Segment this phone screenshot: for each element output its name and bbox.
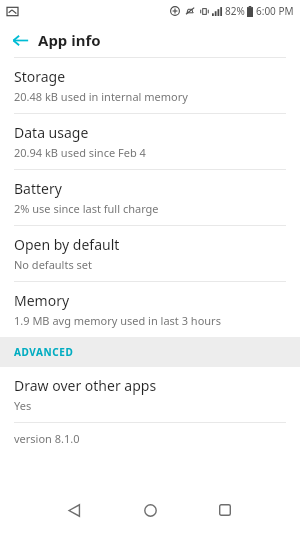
button[interactable]: Recent apps [210, 495, 240, 525]
staticText: Data usage [14, 123, 89, 142]
staticText: Open by default [14, 235, 120, 254]
button[interactable]: Data usage [0, 114, 300, 169]
staticText: Yes [14, 398, 32, 413]
staticText: Memory [14, 291, 70, 310]
button[interactable]: Back [6, 26, 34, 54]
button[interactable]: Battery [0, 170, 300, 225]
staticText: App info [38, 30, 101, 50]
staticText: Battery [14, 179, 62, 198]
button[interactable]: Storage [0, 58, 300, 113]
staticText: No defaults set [14, 257, 92, 272]
staticText: 20.48 kB used in internal memory [14, 89, 188, 104]
staticText: ADVANCED [14, 345, 74, 359]
staticText: 6:00 PM [256, 4, 294, 18]
button[interactable]: Back [59, 495, 89, 525]
staticText: 2% use since last full charge [14, 201, 159, 216]
button[interactable]: Memory [0, 282, 300, 337]
staticText: 1.9 MB avg memory used in last 3 hours [14, 313, 221, 328]
staticText: Storage [14, 67, 66, 86]
staticText: 20.94 kB used since Feb 4 [14, 145, 146, 160]
staticText: version 8.1.0 [14, 431, 80, 446]
staticText: 82% [225, 4, 245, 18]
staticText: Draw over other apps [14, 376, 157, 395]
button[interactable]: Draw over other apps [0, 367, 300, 422]
button[interactable]: Home [135, 495, 165, 525]
button[interactable]: Open by default [0, 226, 300, 281]
